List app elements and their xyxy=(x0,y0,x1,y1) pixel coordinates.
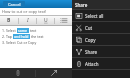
staticText: Select all xyxy=(85,13,104,19)
button[interactable]: Cut xyxy=(72,22,130,33)
staticText: How to cut or copy text! xyxy=(2,9,47,14)
staticText: Cut or Copy xyxy=(17,40,37,45)
button[interactable]: Copy xyxy=(72,34,130,45)
staticText: some xyxy=(18,28,28,33)
staticText: text xyxy=(29,28,37,33)
button[interactable]: Share xyxy=(72,46,130,57)
button[interactable]: U xyxy=(37,16,54,25)
button[interactable]: B xyxy=(0,16,18,25)
staticText: 2. xyxy=(2,34,5,39)
button[interactable]: Send xyxy=(36,68,72,78)
staticText: Tap xyxy=(6,34,13,39)
button[interactable]: I xyxy=(19,16,36,25)
staticText: U xyxy=(44,17,48,24)
staticText: 3. xyxy=(2,40,5,45)
staticText: B xyxy=(7,17,11,24)
button[interactable]: Cancel xyxy=(3,1,25,7)
button[interactable]: Select all xyxy=(72,10,130,21)
button[interactable]: Attach xyxy=(72,58,130,69)
staticText: Select xyxy=(6,28,17,33)
button[interactable]: Bulleted list xyxy=(55,16,72,25)
staticText: Cut xyxy=(85,25,93,31)
staticText: Attach xyxy=(85,61,99,67)
staticText: Share xyxy=(75,2,88,8)
staticText: Share xyxy=(85,49,98,55)
staticText: Copy xyxy=(85,37,96,43)
button[interactable]: How to cut or copy text! xyxy=(0,8,72,15)
staticText: 1. xyxy=(2,28,5,33)
staticText: Select xyxy=(6,40,17,45)
button[interactable]: 1. xyxy=(0,26,72,68)
staticText: Cancel xyxy=(8,2,21,7)
staticText: and hold xyxy=(14,34,29,39)
staticText: I xyxy=(27,17,29,24)
button[interactable]: Attach xyxy=(0,68,35,78)
staticText: the text xyxy=(30,34,44,39)
